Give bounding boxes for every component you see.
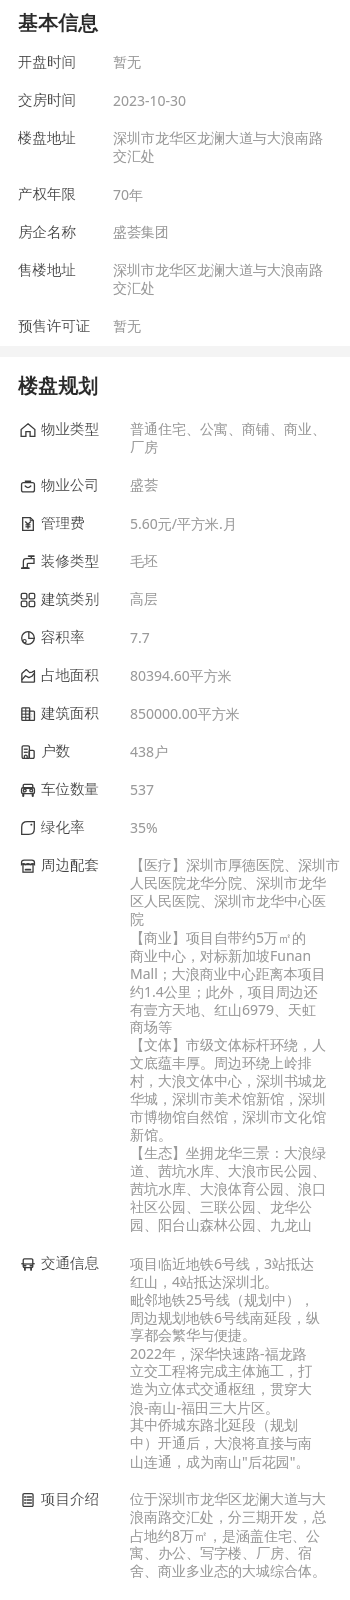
staticText: 毛坯 [130,553,158,571]
staticText: 7.7 [130,629,150,647]
staticText: 预售许可证 [18,318,113,336]
staticText: 35% [130,819,158,837]
staticText: 楼盘地址 [18,130,113,148]
staticText: 容积率 [41,629,130,647]
button[interactable]: 管理费 [0,505,350,543]
staticText: 建筑类别 [41,591,130,609]
staticText: 深圳市龙华区龙澜大道与大浪南路 交汇处 [113,262,323,298]
button[interactable]: 容积率 [0,619,350,657]
button[interactable]: 建筑类别 [0,581,350,619]
staticText: 暂无 [113,318,141,336]
button[interactable]: 开盘时间 [0,44,350,82]
staticText: 户数 [41,743,130,761]
staticText: 项目临近地铁6号线，3站抵达 红山，4站抵达深圳北。 毗邻地铁25号线（规划中）… [130,1255,321,1471]
staticText: 房企名称 [18,224,113,242]
staticText: 438户 [130,743,169,761]
staticText: 项目介绍 [41,1491,130,1509]
button[interactable]: 预售许可证 [0,308,350,346]
button[interactable]: 周边配套 [0,847,350,1245]
staticText: 周边配套 [41,857,130,875]
staticText: 车位数量 [41,781,130,799]
button[interactable]: 项目介绍 [0,1481,350,1591]
staticText: 5.60元/平方米.月 [130,515,237,533]
staticText: 2023-10-30 [113,92,187,110]
button[interactable]: 装修类型 [0,543,350,581]
staticText: 70年 [113,186,144,204]
staticText: 盛荟集团 [113,224,169,242]
button[interactable]: 房企名称 [0,214,350,252]
staticText: 位于深圳市龙华区龙澜大道与大 浪南路交汇处，分三期开发，总 占地约8万㎡，是涵盖… [130,1491,326,1581]
staticText: 物业公司 [41,477,130,495]
staticText: 物业类型 [41,421,130,439]
staticText: 80394.60平方米 [130,667,232,685]
staticText: 绿化率 [41,819,130,837]
staticText: 基本信息 [18,12,98,36]
staticText: 深圳市龙华区龙澜大道与大浪南路 交汇处 [113,130,323,166]
staticText: 楼盘规划 [18,375,98,399]
staticText: 盛荟 [130,477,158,495]
staticText: 交通信息 [41,1255,130,1273]
button[interactable]: 售楼地址 [0,252,350,308]
button[interactable]: 占地面积 [0,657,350,695]
staticText: 产权年限 [18,186,113,204]
button[interactable]: 建筑面积 [0,695,350,733]
staticText: 高层 [130,591,158,609]
staticText: 【医疗】深圳市厚德医院、深圳市 人民医院龙华分院、深圳市龙华 区人民医院、深圳市… [130,857,340,1235]
staticText: 开盘时间 [18,54,113,72]
staticText: 占地面积 [41,667,130,685]
button[interactable]: 楼盘地址 [0,120,350,176]
staticText: 普通住宅、公寓、商铺、商业、 厂房 [130,421,326,457]
button[interactable]: 产权年限 [0,176,350,214]
button[interactable]: 交通信息 [0,1245,350,1481]
staticText: 850000.00平方米 [130,705,240,723]
staticText: 交房时间 [18,92,113,110]
button[interactable]: 车位数量 [0,771,350,809]
button[interactable]: 户数 [0,733,350,771]
button[interactable]: 交房时间 [0,82,350,120]
button[interactable]: 绿化率 [0,809,350,847]
staticText: 售楼地址 [18,262,113,280]
staticText: 建筑面积 [41,705,130,723]
staticText: 537 [130,781,155,799]
button[interactable]: 物业类型 [0,411,350,467]
staticText: 管理费 [41,515,130,533]
button[interactable]: 物业公司 [0,467,350,505]
staticText: 装修类型 [41,553,130,571]
staticText: 暂无 [113,54,141,72]
